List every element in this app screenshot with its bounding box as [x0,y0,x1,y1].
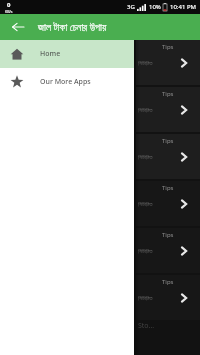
staticText: বিস্তারিত [138,295,153,301]
staticText: বিস্তারিত [138,248,153,254]
button[interactable]: Tips [136,87,200,132]
button[interactable]: Tips [136,228,200,273]
button[interactable]: Tips [136,181,200,226]
staticText: Home [40,49,61,59]
staticText: Tips [162,137,174,145]
staticText: বিস্তারিত [138,60,153,66]
staticText: জাল টাকা চেনার উপায় [38,20,107,34]
staticText: Our More Apps [40,77,91,87]
button[interactable]: Home [0,40,134,68]
staticText: বিস্তারিত [138,154,153,160]
staticText: KB/s [5,9,13,14]
staticText: বিস্তারিত [138,201,153,207]
button[interactable]: Our More Apps [0,68,134,96]
staticText: 10:41 PM [170,3,196,11]
button[interactable]: Tips [136,40,200,85]
button[interactable]: Tips [136,275,200,320]
staticText: 0 [7,1,11,9]
button[interactable]: Tips [136,134,200,179]
button[interactable]: Back [8,17,28,37]
staticText: Tips [162,231,174,239]
staticText: Tips [162,43,174,51]
staticText: বিস্তারিত [138,107,153,113]
staticText: Tips [162,278,174,286]
staticText: 10% [149,3,161,11]
staticText: Sto... [138,321,155,331]
staticText: 3G [127,3,135,11]
staticText: Tips [162,90,174,98]
staticText: Tips [162,184,174,192]
